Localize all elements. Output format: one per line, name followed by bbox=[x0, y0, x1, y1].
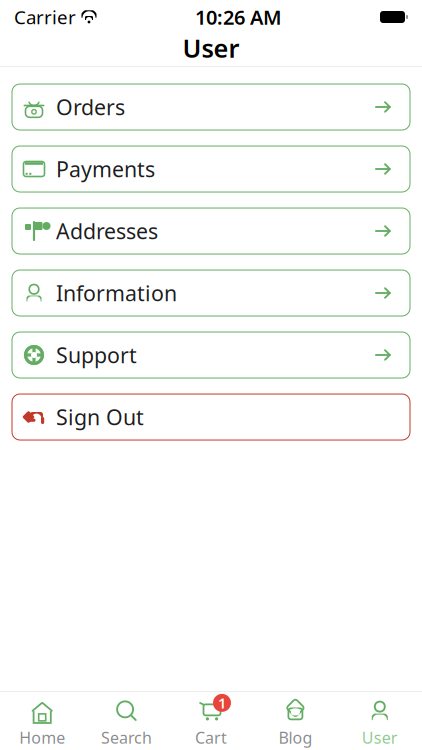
button[interactable]: Sign Out bbox=[12, 394, 410, 440]
staticText: Information bbox=[56, 279, 177, 307]
staticText: User bbox=[362, 727, 398, 748]
staticText: Payments bbox=[56, 155, 155, 183]
staticText: Blog bbox=[278, 727, 312, 748]
staticText: Sign Out bbox=[56, 403, 144, 431]
button[interactable]: Support bbox=[12, 332, 410, 378]
staticText: 1 bbox=[218, 693, 226, 713]
button[interactable]: Search bbox=[84, 690, 169, 750]
button[interactable]: Addresses bbox=[12, 208, 410, 254]
staticText: Addresses bbox=[56, 217, 158, 245]
staticText: Orders bbox=[56, 93, 125, 121]
staticText: Home bbox=[19, 727, 65, 748]
staticText: 10:26 AM bbox=[195, 4, 282, 30]
button[interactable]: User bbox=[338, 690, 422, 750]
staticText: User bbox=[182, 31, 239, 65]
staticText: Search bbox=[101, 727, 152, 748]
button[interactable]: Blog bbox=[253, 690, 338, 750]
button[interactable]: Information bbox=[12, 270, 410, 316]
button[interactable]: 1 bbox=[169, 690, 253, 750]
button[interactable]: Payments bbox=[12, 146, 410, 192]
button[interactable]: Home bbox=[0, 690, 84, 750]
staticText: Cart bbox=[195, 727, 227, 748]
staticText: Carrier bbox=[14, 5, 76, 29]
button[interactable]: Orders bbox=[12, 84, 410, 130]
staticText: Support bbox=[56, 341, 137, 369]
